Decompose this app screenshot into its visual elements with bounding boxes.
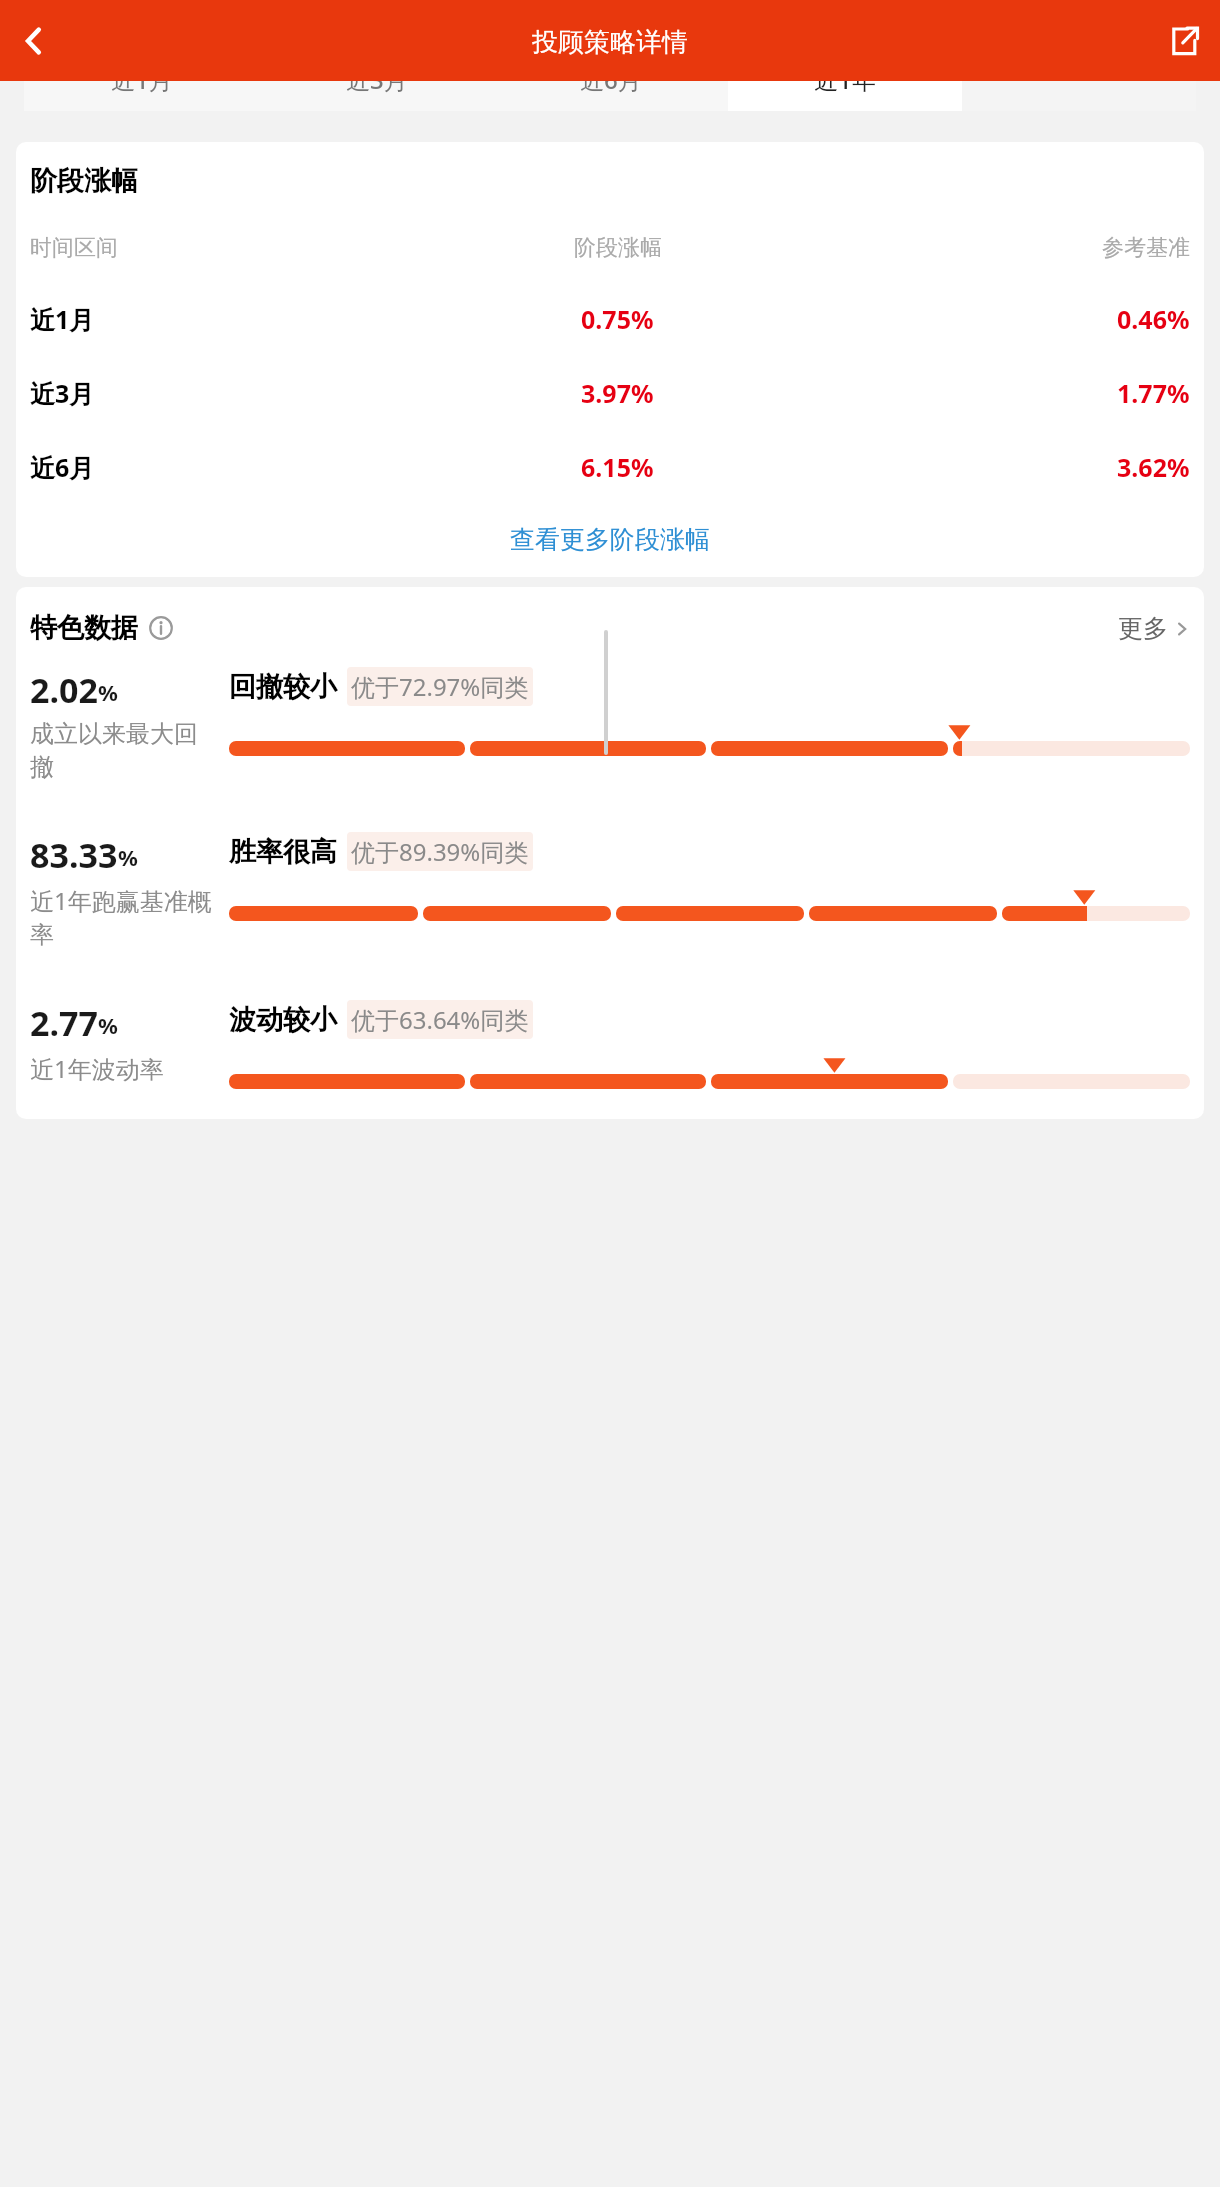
staticText: 近3月 (30, 376, 95, 410)
staticText: 1.77% (1117, 376, 1190, 410)
staticText: 时间区间 (30, 234, 118, 262)
button[interactable]: 近6月 (494, 81, 728, 111)
staticText: 近3月 (346, 81, 408, 93)
staticText: 更多 (1118, 613, 1168, 644)
button[interactable]: 查看更多阶段涨幅 (30, 518, 1190, 561)
staticText: 近1年跑赢基准概率 (30, 884, 215, 950)
button[interactable]: 近1月 (24, 81, 259, 111)
staticText: 成立以来最大回撤 (30, 719, 215, 782)
button[interactable]: Back (6, 13, 62, 69)
staticText: 波动较小 (229, 1003, 337, 1037)
staticText: 2.02 (30, 667, 98, 713)
button[interactable]: Info (148, 615, 174, 641)
staticText: 胜率很高 (229, 835, 337, 869)
staticText: 优于89.39%同类 (351, 835, 529, 868)
staticText: 近1年 (814, 81, 876, 93)
staticText: 阶段涨幅 (574, 234, 662, 262)
staticText: 0.46% (1117, 302, 1190, 336)
staticText: 投顾策略详情 (532, 26, 688, 59)
staticText: 6.15% (581, 450, 654, 484)
staticText: 回撤较小 (229, 670, 337, 704)
staticText: % (118, 842, 138, 872)
staticText: 83.33 (30, 832, 118, 878)
staticText: 3.97% (581, 376, 654, 410)
staticText: 优于72.97%同类 (351, 670, 529, 703)
staticText: 3.62% (1117, 450, 1190, 484)
staticText: 特色数据 (30, 611, 138, 645)
staticText: 参考基准 (1102, 234, 1190, 262)
staticText: 近1月 (30, 302, 95, 336)
button[interactable]: 更多 (1118, 613, 1190, 644)
staticText: 2.77 (30, 1000, 98, 1046)
button[interactable]: 近3月 (259, 81, 494, 111)
staticText: 近6月 (30, 450, 95, 484)
staticText: 近1月 (111, 81, 173, 93)
staticText: % (98, 1010, 118, 1040)
staticText: 优于63.64%同类 (351, 1003, 529, 1036)
staticText: 近6月 (580, 81, 642, 93)
staticText: % (98, 677, 118, 707)
staticText: 0.75% (581, 302, 654, 336)
button[interactable]: Share (1156, 13, 1212, 69)
staticText: 阶段涨幅 (30, 164, 138, 198)
staticText: 近1年波动率 (30, 1052, 164, 1085)
staticText: 查看更多阶段涨幅 (510, 524, 710, 555)
button[interactable]: 近1年 (728, 81, 962, 111)
